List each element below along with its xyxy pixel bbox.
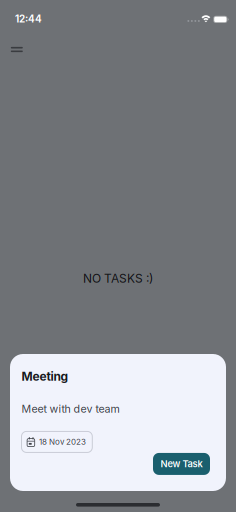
button[interactable]: New Task	[153, 453, 210, 475]
staticText: New Task	[160, 458, 202, 470]
staticText: Meeting	[21, 369, 68, 383]
button[interactable]: Menu	[4, 38, 30, 60]
staticText: 12:44	[15, 13, 42, 25]
staticText: Meet with dev team	[21, 402, 119, 415]
staticText: 18 Nov 2023	[39, 437, 86, 447]
staticText: NO TASKS :)	[83, 271, 153, 285]
